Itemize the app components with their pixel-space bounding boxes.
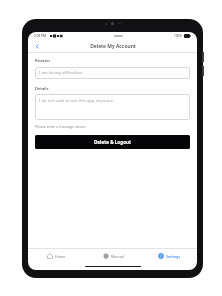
button[interactable]: I am facing difficulties (35, 67, 190, 79)
button[interactable]: Settings (141, 249, 197, 263)
staticText: Please write a message above (35, 124, 86, 129)
staticText: Delete My Account (90, 43, 136, 50)
staticText: Reason (35, 58, 50, 64)
staticText: 2:03 PM (34, 34, 47, 38)
staticText: Settings (166, 254, 180, 259)
button[interactable]: Back (32, 41, 42, 51)
button[interactable]: I do not wish to use this app anymore (35, 94, 190, 120)
button[interactable]: Delete & Logout (35, 135, 190, 149)
button[interactable]: Home (28, 249, 85, 263)
staticText: I am facing difficulties (39, 70, 83, 76)
staticText: Delete & Logout (94, 139, 131, 145)
button[interactable]: Manual (85, 249, 141, 263)
staticText: Home (55, 254, 66, 259)
staticText: 100% (174, 34, 182, 38)
staticText: I do not wish to use this app anymore (39, 98, 114, 104)
staticText: Details (35, 86, 49, 91)
staticText: Manual (111, 254, 124, 259)
